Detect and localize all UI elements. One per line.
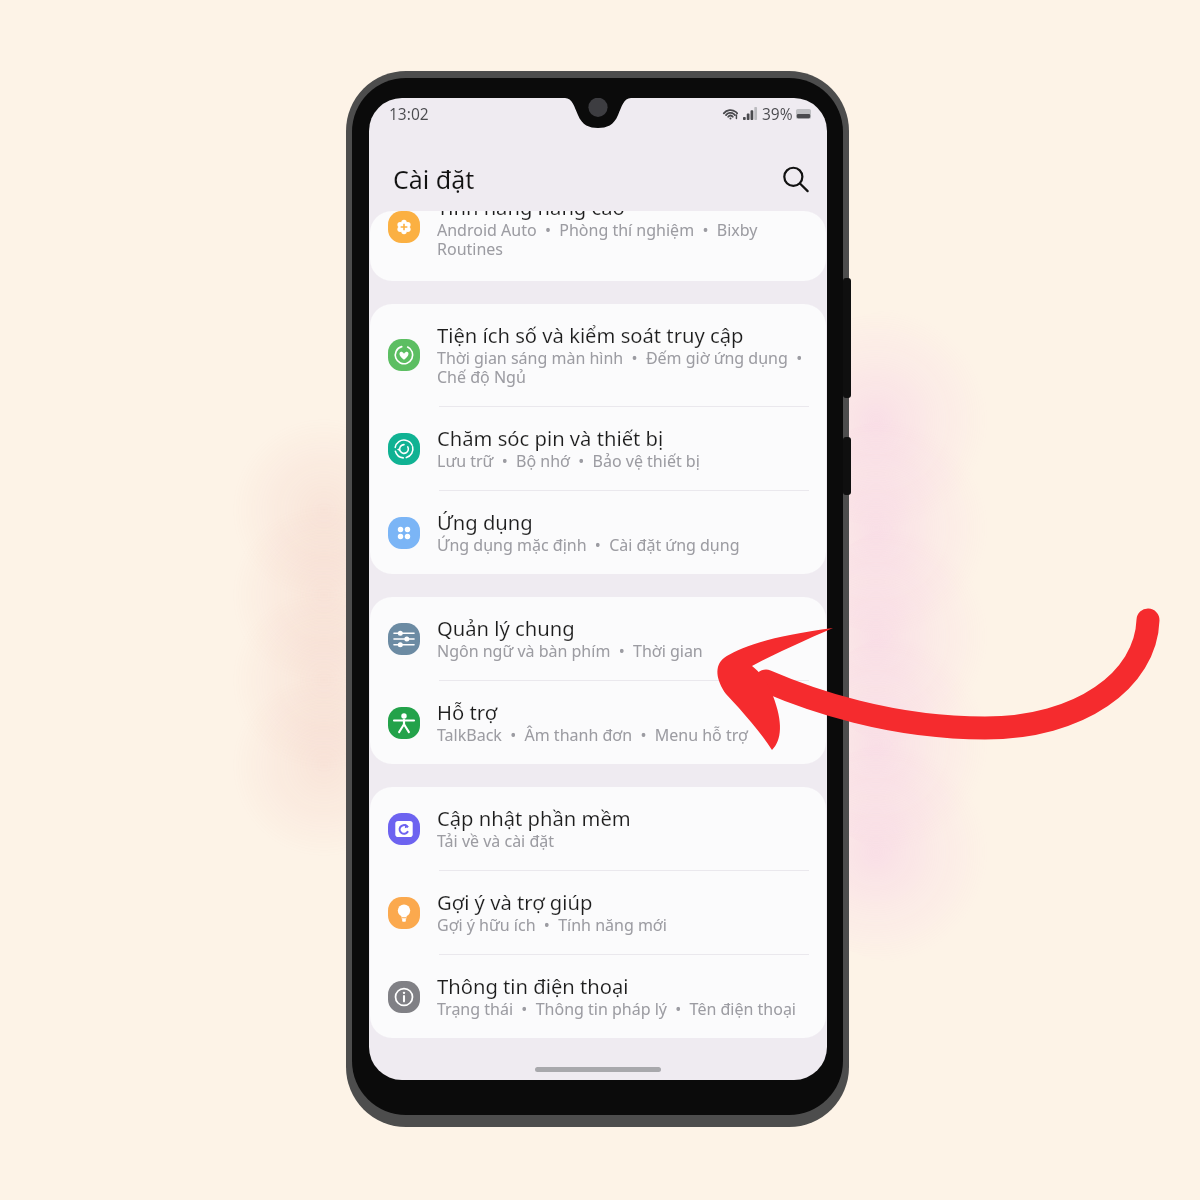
button[interactable]: Ứng dụng (370, 491, 826, 574)
button[interactable]: Hỗ trợ (370, 681, 826, 764)
staticText: Hỗ trợ (437, 697, 498, 726)
staticText: Ứng dụng mặc định • Cài đặt ứng dụng (437, 536, 740, 555)
staticText: Gợi ý hữu ích • Tính năng mới (437, 916, 667, 935)
button[interactable]: Quản lý chung (370, 597, 826, 680)
staticText: Lưu trữ • Bộ nhớ • Bảo vệ thiết bị (437, 452, 700, 471)
staticText: Ngôn ngữ và bàn phím • Thời gian (437, 642, 703, 661)
button[interactable]: Search (776, 160, 814, 198)
staticText: Android Auto • Phòng thí nghiệm • Bixby … (437, 221, 758, 259)
button[interactable]: Chăm sóc pin và thiết bị (370, 407, 826, 490)
staticText: Thời gian sáng màn hình • Đếm giờ ứng dụ… (437, 349, 803, 387)
staticText: Ứng dụng (437, 507, 533, 536)
staticText: Tiện ích số và kiểm soát truy cập (437, 320, 744, 349)
button[interactable]: Cập nhật phần mềm (370, 787, 826, 870)
staticText: Trạng thái • Thông tin pháp lý • Tên điệ… (437, 1000, 796, 1019)
staticText: Tính năng nâng cao (437, 211, 625, 221)
staticText: Tải về và cài đặt (437, 832, 555, 851)
staticText: Chăm sóc pin và thiết bị (437, 423, 664, 452)
staticText: TalkBack • Âm thanh đơn • Menu hỗ trợ (437, 726, 748, 745)
staticText: Cài đặt (393, 162, 475, 196)
button[interactable]: Gợi ý và trợ giúp (370, 871, 826, 954)
staticText: 39% (762, 103, 793, 124)
button[interactable]: Tiện ích số và kiểm soát truy cập (370, 304, 826, 406)
staticText: Gợi ý và trợ giúp (437, 887, 593, 916)
button[interactable]: Tính năng nâng cao (370, 211, 826, 262)
button[interactable]: Thông tin điện thoại (370, 955, 826, 1038)
staticText: Quản lý chung (437, 613, 575, 642)
staticText: Thông tin điện thoại (437, 971, 629, 1000)
staticText: 13:02 (389, 103, 429, 124)
staticText: Cập nhật phần mềm (437, 803, 631, 832)
